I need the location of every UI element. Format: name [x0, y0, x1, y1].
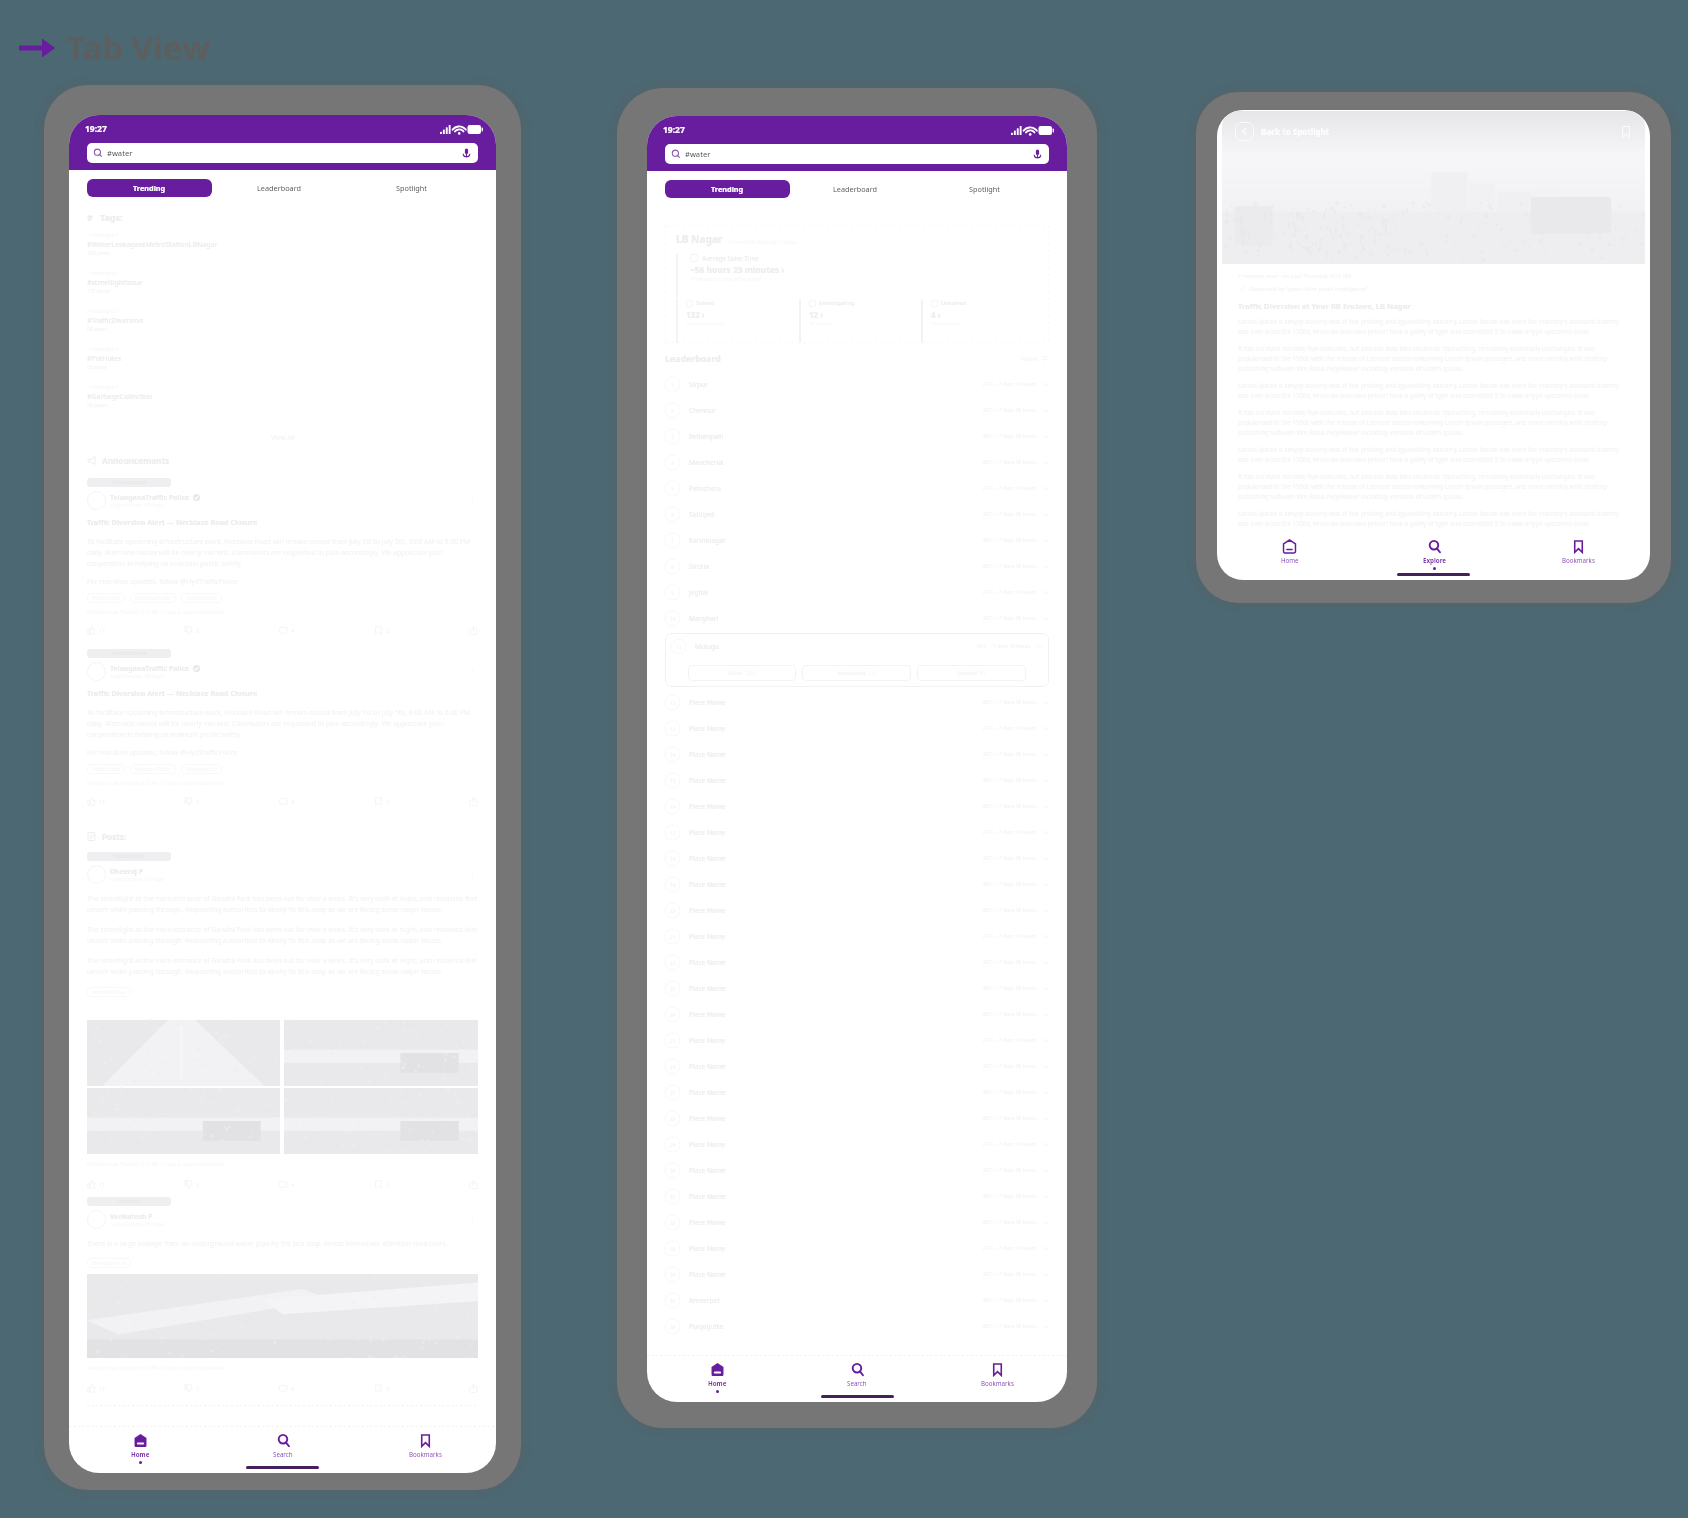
button[interactable]: Bookmarks — [1506, 540, 1650, 564]
button[interactable]: Filters — [1021, 355, 1049, 363]
button[interactable]: Bookmarks — [927, 1363, 1067, 1387]
button[interactable]: Like — [87, 797, 105, 806]
staticText: Leaderboard — [833, 184, 877, 194]
button[interactable]: Bookmark — [374, 626, 389, 635]
staticText: 98 posts — [87, 326, 108, 333]
button[interactable]: Search — [787, 1363, 927, 1387]
button[interactable]: Back — [1235, 122, 1254, 141]
button[interactable]: 11 — [671, 633, 1043, 687]
button[interactable]: Bookmark — [1620, 126, 1632, 138]
button[interactable]: Comment — [279, 797, 294, 806]
button[interactable]: Trending — [87, 179, 212, 197]
button[interactable]: Bookmarks — [354, 1434, 496, 1458]
button[interactable]: Dislike — [184, 797, 199, 806]
staticText: AST: ~ 7 days 18 hours — [983, 1271, 1037, 1278]
staticText: AST: ~ 7 days 18 hours — [983, 1141, 1037, 1148]
button[interactable]: Home — [647, 1363, 787, 1393]
button[interactable]: #water — [87, 143, 478, 163]
button[interactable]: Explore — [1362, 540, 1506, 570]
button[interactable]: Spotlight — [919, 180, 1049, 198]
button[interactable]: Like — [87, 626, 105, 635]
button[interactable]: Spotlight — [345, 179, 478, 197]
button[interactable]: Share — [469, 1180, 478, 1189]
button[interactable]: Dislike — [184, 626, 199, 635]
button[interactable]: Comment — [279, 1180, 294, 1189]
button[interactable]: Leaderboard — [212, 179, 345, 197]
button[interactable]: Bookmark — [374, 1180, 389, 1189]
button[interactable]: Voice search — [461, 146, 472, 160]
staticText: AST: ~ 7 days 18 hours — [983, 1297, 1037, 1304]
button[interactable]: Like — [87, 1180, 105, 1189]
button[interactable]: Trending — [665, 180, 790, 198]
staticText: AST: ~ 7 days 18 hours — [983, 511, 1037, 518]
button[interactable]: #water — [665, 144, 1049, 164]
button[interactable]: Bookmark — [374, 1384, 389, 1393]
button[interactable]: Solved 123 › — [688, 665, 796, 681]
button[interactable]: Share — [469, 1384, 478, 1393]
button[interactable]: Home — [1217, 540, 1362, 564]
button[interactable]: Investigating 12 › — [802, 665, 911, 681]
button[interactable]: Unsolved 0 › — [917, 665, 1026, 681]
button[interactable]: Dislike — [184, 1180, 199, 1189]
button[interactable]: Comment — [279, 1384, 294, 1393]
button[interactable]: Dislike — [184, 1384, 199, 1393]
button[interactable]: Comment — [279, 626, 294, 635]
button[interactable]: Share — [469, 797, 478, 806]
button[interactable]: Leaderboard — [790, 180, 919, 198]
button[interactable]: Home — [69, 1434, 212, 1464]
button[interactable]: Search — [212, 1434, 354, 1458]
button[interactable]: Share — [469, 626, 478, 635]
button[interactable]: Voice search — [1032, 147, 1043, 161]
staticText: Place Name — [689, 828, 726, 837]
button[interactable]: Bookmark — [374, 797, 389, 806]
button[interactable]: Like — [87, 1384, 105, 1393]
